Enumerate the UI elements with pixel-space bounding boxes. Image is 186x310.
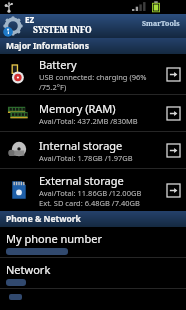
staticText: Battery [39,57,77,72]
staticText: External storage [39,173,124,188]
staticText: SYSTEM INFO [33,24,92,36]
button[interactable]: Details for Internal storage [165,142,181,158]
staticText: USB connected: charging (96% [39,72,147,82]
button[interactable]: Details for External storage [165,182,181,198]
button[interactable]: My phone number [0,227,186,257]
staticText: Phone & Network [6,213,81,225]
button[interactable]: Battery [0,54,186,94]
button[interactable]: Internal storage [0,132,186,168]
staticText: My phone number [6,231,102,246]
button[interactable]: Details for Battery [165,66,181,82]
button[interactable]: Details for Memory (RAM) [165,105,181,121]
staticText: Internal storage [39,138,123,153]
staticText: Memory (RAM) [39,101,116,116]
button[interactable]: Memory (RAM) [0,95,186,131]
staticText: Ext. SD card: 6.48GB /7.40GB [39,198,140,208]
staticText: Avai/Total: 11.86GB /12.00GB [39,188,142,198]
staticText: Major Informations [6,40,89,52]
staticText: Avai/Total: 437.2MB /830MB [39,116,138,126]
staticText: EZ [25,14,35,25]
button[interactable]: External storage [0,169,186,211]
staticText: Network [6,262,51,277]
staticText: /75.2°F) [39,82,67,92]
staticText: Avai/Total: 1.78GB /1.97GB [39,153,133,163]
button[interactable]: Network [0,258,186,288]
staticText: SmarTools [142,19,180,29]
